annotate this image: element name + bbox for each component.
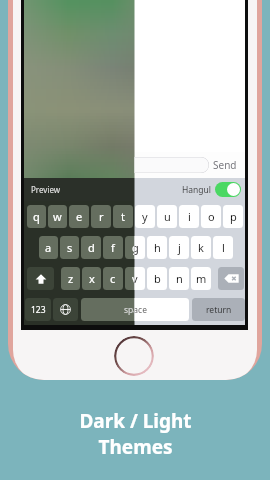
button[interactable]: f — [103, 236, 123, 259]
button[interactable]: space — [81, 298, 189, 321]
button[interactable]: return — [192, 298, 245, 321]
staticText: return — [206, 304, 232, 316]
button[interactable]: q — [27, 205, 46, 228]
button[interactable]: k — [191, 236, 211, 259]
button[interactable]: t — [113, 205, 133, 228]
button[interactable]: p — [223, 205, 243, 228]
button[interactable]: b — [147, 267, 167, 290]
button[interactable]: a — [39, 236, 58, 259]
button[interactable]: u — [157, 205, 177, 228]
staticText: d — [88, 240, 95, 255]
button[interactable]: r — [91, 205, 111, 228]
button[interactable]: l — [213, 236, 233, 259]
staticText: r — [99, 209, 104, 224]
button[interactable]: u — [157, 205, 177, 228]
staticText: m — [196, 271, 207, 286]
button[interactable]: Hangul toggle — [215, 182, 241, 197]
staticText: r — [99, 209, 104, 224]
button[interactable]: return — [192, 298, 245, 321]
staticText: a — [45, 240, 52, 255]
button[interactable]: o — [201, 205, 221, 228]
staticText: Preview — [31, 184, 61, 195]
button[interactable]: e — [69, 205, 89, 228]
button[interactable]: d — [81, 236, 101, 259]
button[interactable]: Home — [114, 336, 154, 376]
button[interactable]: Send — [213, 158, 237, 172]
button[interactable]: v — [125, 267, 145, 290]
button[interactable]: a — [39, 236, 58, 259]
button[interactable]: z — [61, 267, 80, 290]
button[interactable]: h — [147, 236, 167, 259]
button[interactable]: i — [179, 205, 199, 228]
button[interactable]: b — [147, 267, 167, 290]
button[interactable]: o — [201, 205, 221, 228]
button[interactable]: j — [169, 236, 189, 259]
button[interactable]: m — [191, 267, 211, 290]
button[interactable]: g — [125, 236, 145, 259]
staticText: q — [33, 209, 40, 224]
button[interactable]: x — [82, 267, 101, 290]
staticText: 123 — [31, 304, 46, 316]
staticText: e — [76, 209, 83, 224]
staticText: Hangul — [182, 184, 211, 196]
button[interactable]: s — [60, 236, 79, 259]
staticText: o — [208, 209, 215, 224]
button[interactable]: Hangul toggle — [215, 182, 241, 197]
staticText: f — [111, 240, 115, 255]
button[interactable]: n — [169, 267, 189, 290]
button[interactable]: 123 — [25, 298, 51, 321]
staticText: Preview — [31, 184, 61, 195]
staticText: m — [196, 271, 207, 286]
staticText: k — [198, 240, 204, 255]
button[interactable]: q — [27, 205, 46, 228]
staticText: space — [124, 304, 147, 316]
button[interactable]: h — [147, 236, 167, 259]
button[interactable]: s — [60, 236, 79, 259]
button[interactable]: Backspace — [218, 267, 244, 290]
button[interactable]: p — [223, 205, 243, 228]
button[interactable]: m — [191, 267, 211, 290]
button[interactable]: space — [81, 298, 189, 321]
staticText: l — [222, 240, 225, 255]
button[interactable]: Change keyboard — [53, 298, 78, 321]
button[interactable]: i — [179, 205, 199, 228]
button[interactable]: Shift — [27, 267, 54, 290]
button[interactable]: f — [103, 236, 123, 259]
button[interactable]: d — [81, 236, 101, 259]
staticText: n — [176, 271, 183, 286]
button[interactable]: y — [135, 205, 155, 228]
staticText: t — [121, 209, 125, 224]
button[interactable]: Message field — [28, 157, 209, 173]
staticText: x — [89, 271, 95, 286]
button[interactable]: n — [169, 267, 189, 290]
staticText: 123 — [31, 304, 46, 316]
button[interactable]: g — [125, 236, 145, 259]
staticText: Send — [213, 158, 237, 172]
button[interactable]: t — [113, 205, 133, 228]
button[interactable]: c — [103, 267, 123, 290]
button[interactable]: r — [91, 205, 111, 228]
button[interactable]: Backspace — [218, 267, 244, 290]
button[interactable]: x — [82, 267, 101, 290]
button[interactable]: y — [135, 205, 155, 228]
staticText: g — [132, 240, 139, 255]
button[interactable]: Change keyboard — [53, 298, 78, 321]
button[interactable]: l — [213, 236, 233, 259]
button[interactable]: w — [48, 205, 67, 228]
staticText: Dark / Light — [79, 408, 192, 434]
staticText: f — [111, 240, 115, 255]
staticText: p — [230, 209, 237, 224]
button[interactable]: k — [191, 236, 211, 259]
button[interactable]: c — [103, 267, 123, 290]
button[interactable]: Shift — [27, 267, 54, 290]
staticText: k — [198, 240, 204, 255]
staticText: h — [154, 240, 161, 255]
button[interactable]: v — [125, 267, 145, 290]
staticText: j — [178, 240, 181, 255]
button[interactable]: w — [48, 205, 67, 228]
button[interactable]: z — [61, 267, 80, 290]
button[interactable]: e — [69, 205, 89, 228]
button[interactable]: 123 — [25, 298, 51, 321]
button[interactable]: j — [169, 236, 189, 259]
staticText: v — [132, 271, 138, 286]
